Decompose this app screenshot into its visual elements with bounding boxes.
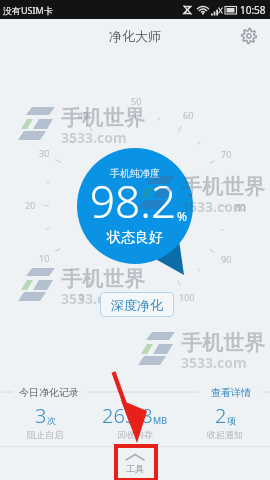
staticText: 阻止自启 [27, 429, 63, 440]
button[interactable]: 3 [0, 402, 90, 440]
staticText: 2 [215, 402, 227, 429]
staticText: 手机世界 [61, 266, 145, 292]
staticText: 收起通知 [207, 429, 243, 440]
staticText: 次 [47, 415, 56, 426]
staticText: 没有USIM卡 [3, 4, 53, 16]
staticText: 30 [39, 147, 50, 159]
staticText: 手机纯净度 [110, 167, 160, 180]
staticText: 3533.com [181, 353, 247, 372]
staticText: 手机世界 [181, 174, 265, 200]
button[interactable]: 手机纯净度 [77, 148, 193, 264]
staticText: 10 [39, 252, 50, 264]
staticText: 0 [79, 291, 85, 303]
staticText: 3533.com [61, 128, 127, 147]
staticText: 40 [78, 109, 89, 121]
staticText: 3533.com [181, 197, 247, 216]
staticText: 查看详情 [211, 386, 251, 399]
staticText: 回收内存 [117, 429, 153, 440]
button[interactable]: Settings [239, 26, 259, 46]
staticText: 项 [227, 415, 236, 426]
staticText: 3 [35, 402, 47, 429]
staticText: % [177, 208, 187, 224]
staticText: 60 [183, 109, 194, 121]
staticText: 90 [221, 253, 232, 265]
button[interactable]: 2 [180, 402, 270, 440]
staticText: 100 [179, 291, 195, 303]
staticText: MB [153, 414, 168, 426]
staticText: 20 [25, 199, 36, 211]
staticText: 净化大师 [109, 28, 161, 44]
staticText: 80 [235, 201, 246, 213]
staticText: 10:58 [240, 3, 266, 17]
staticText: 50 [131, 95, 142, 107]
button[interactable]: 265.8 [90, 402, 180, 440]
staticText: 今日净化记录 [19, 386, 79, 399]
staticText: 98.2 [90, 171, 177, 231]
button[interactable]: 工具 [125, 453, 145, 474]
staticText: 状态良好 [107, 229, 163, 247]
staticText: 70 [221, 148, 232, 160]
staticText: 手机世界 [61, 105, 145, 131]
staticText: 工具 [126, 463, 144, 474]
button[interactable]: 深度净化 [100, 292, 174, 317]
staticText: 265.8 [102, 402, 153, 429]
staticText: 深度净化 [111, 297, 163, 313]
staticText: 3533.com [61, 289, 127, 308]
staticText: 手机世界 [181, 330, 265, 356]
button[interactable]: 查看详情 [211, 386, 251, 399]
